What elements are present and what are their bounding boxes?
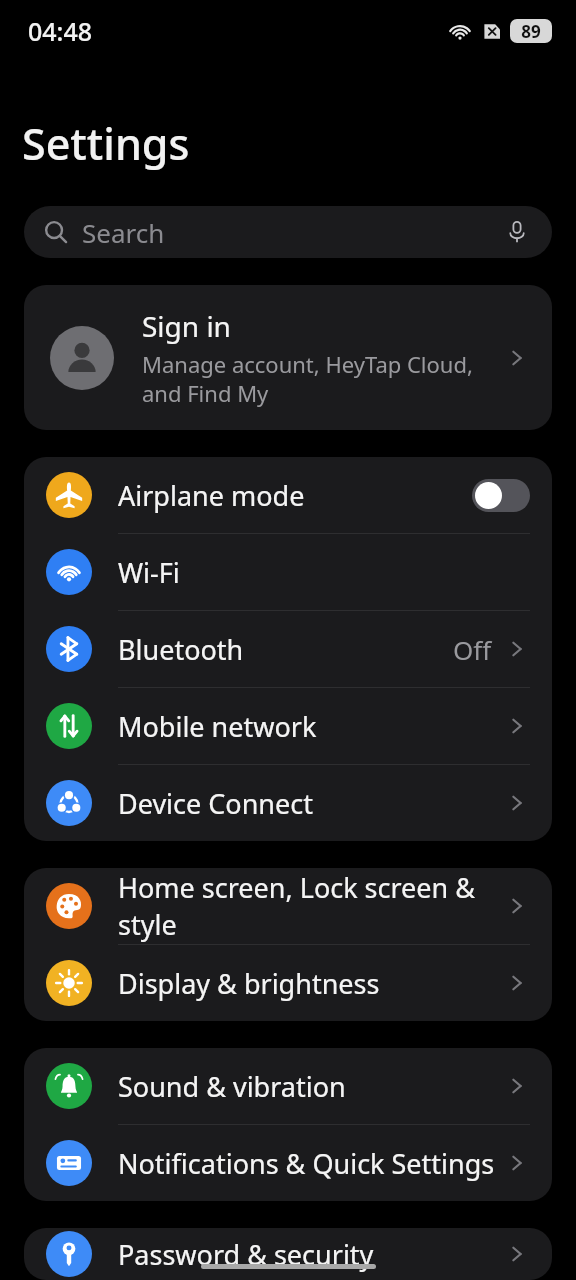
staticText: Manage account, HeyTap Cloud, and Find M… xyxy=(142,349,494,408)
button[interactable]: Search xyxy=(24,206,552,258)
staticText: Wi-Fi xyxy=(118,554,530,591)
staticText: Off xyxy=(453,632,492,667)
staticText: Airplane mode xyxy=(118,477,472,514)
button[interactable]: Display & brightness xyxy=(24,945,552,1021)
button[interactable]: Mobile network xyxy=(24,688,552,765)
button[interactable]: Notifications & Quick Settings xyxy=(24,1125,552,1201)
staticText: Mobile network xyxy=(118,708,504,745)
staticText: Sound & vibration xyxy=(118,1068,504,1105)
staticText: Device Connect xyxy=(118,785,504,822)
button[interactable]: Device Connect xyxy=(24,765,552,841)
staticText: Search xyxy=(82,215,165,250)
staticText: 89 xyxy=(521,20,541,43)
button[interactable]: Sound & vibration xyxy=(24,1048,552,1125)
staticText: Sign in xyxy=(142,307,231,345)
staticText: Notifications & Quick Settings xyxy=(118,1145,504,1182)
button[interactable]: Bluetooth xyxy=(24,611,552,688)
staticText: Home screen, Lock screen & style xyxy=(118,869,504,943)
staticText: Display & brightness xyxy=(118,965,504,1002)
button[interactable]: Sign in xyxy=(24,285,552,430)
button[interactable]: Airplane mode, off xyxy=(472,479,530,512)
button[interactable]: Home screen, Lock screen & style xyxy=(24,868,552,945)
staticText: Password & security xyxy=(118,1236,504,1273)
staticText: Settings xyxy=(22,114,190,173)
button[interactable]: Airplane mode xyxy=(24,457,552,534)
button[interactable]: Wi-Fi xyxy=(24,534,552,611)
button[interactable]: Voice search xyxy=(502,217,532,247)
staticText: 04:48 xyxy=(28,14,93,48)
staticText: Bluetooth xyxy=(118,631,453,668)
button[interactable]: Password & security xyxy=(24,1228,552,1280)
